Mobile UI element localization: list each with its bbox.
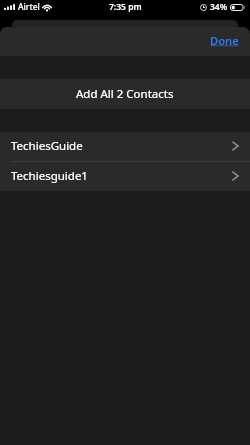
button[interactable]: Done: [199, 29, 250, 54]
staticText: Done: [210, 33, 239, 48]
button[interactable]: Add All 2 Contacts: [0, 79, 250, 109]
staticText: 7:35 pm: [109, 1, 142, 13]
other: Alarm: [200, 4, 207, 11]
button[interactable]: Techiesguide1: [0, 162, 250, 191]
staticText: Add All 2 Contacts: [76, 86, 174, 102]
staticText: Techiesguide1: [11, 168, 88, 184]
staticText: 34%: [210, 1, 228, 13]
staticText: Airtel: [18, 1, 40, 13]
staticText: TechiesGuide: [11, 138, 83, 154]
button[interactable]: TechiesGuide: [0, 132, 250, 162]
